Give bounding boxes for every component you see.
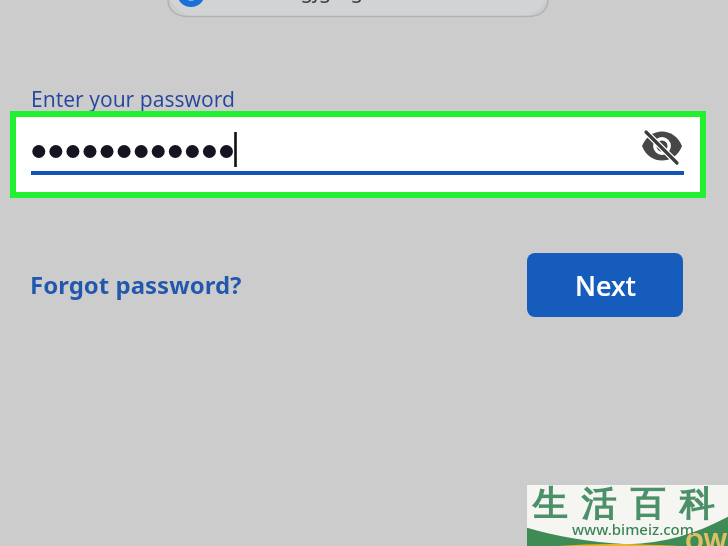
button[interactable]: Show password — [630, 114, 694, 178]
staticText: somethingjg@gmail.com — [207, 0, 454, 5]
staticText: www.bimeiz.com — [572, 519, 694, 539]
staticText: Next — [575, 267, 636, 304]
button[interactable]: somethingjg@gmail.com — [168, 0, 548, 16]
button[interactable]: Forgot password? — [25, 264, 247, 305]
button[interactable]: Show password — [16, 117, 700, 192]
button[interactable]: Next — [527, 253, 683, 317]
staticText: Forgot password? — [30, 268, 242, 301]
staticText: OW — [685, 524, 727, 546]
button[interactable]: Enter your password — [31, 85, 235, 114]
staticText: 生活百科 — [525, 482, 721, 526]
